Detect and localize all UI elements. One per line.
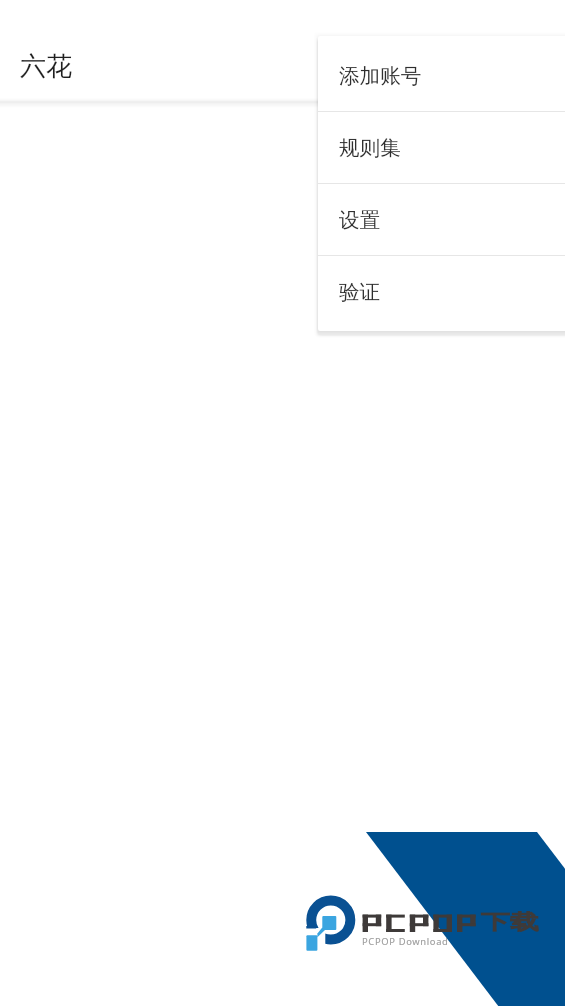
staticText: 规则集: [339, 135, 401, 161]
button[interactable]: 验证: [318, 256, 565, 327]
staticText: 设置: [339, 207, 381, 233]
button[interactable]: 添加账号: [318, 40, 565, 111]
staticText: 下载: [481, 909, 539, 935]
staticText: 六花: [20, 50, 72, 83]
button[interactable]: 设置: [318, 184, 565, 255]
staticText: PCPOP Download: [362, 935, 449, 948]
staticText: 添加账号: [339, 63, 422, 89]
button[interactable]: 规则集: [318, 112, 565, 183]
staticText: 验证: [339, 279, 381, 305]
